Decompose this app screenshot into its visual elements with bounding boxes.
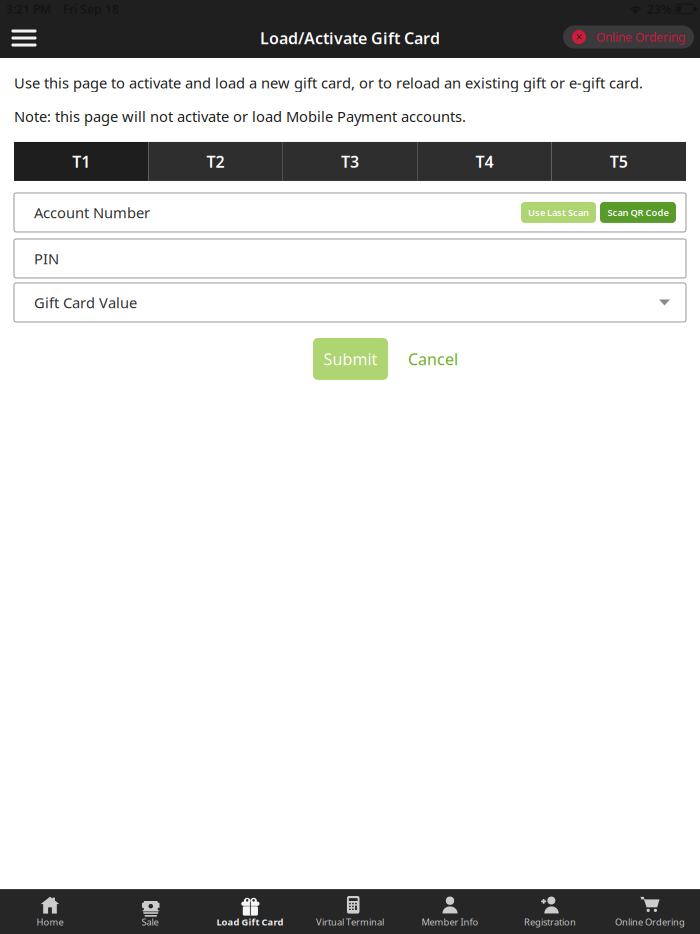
staticText: Member Info (421, 916, 478, 928)
button[interactable]: Virtual Terminal (300, 890, 400, 934)
staticText: Virtual Terminal (316, 916, 384, 928)
button[interactable]: Scan QR Code (600, 202, 676, 223)
staticText: 23% (647, 1, 672, 17)
button[interactable]: Online Ordering (600, 890, 700, 934)
staticText: Load Gift Card (216, 916, 283, 928)
staticText: Sale (141, 916, 158, 928)
button[interactable]: Home (0, 890, 100, 934)
staticText: Fri Sep 18 (63, 1, 119, 17)
button[interactable]: T1 (14, 142, 148, 181)
button[interactable]: Sale (100, 890, 200, 934)
staticText: T1 (72, 151, 90, 172)
staticText: T3 (341, 151, 359, 172)
staticText: Use this page to activate and load a new… (14, 73, 643, 92)
button[interactable]: T3 (283, 142, 417, 181)
staticText: T2 (207, 151, 225, 172)
button[interactable]: Load Gift Card (200, 890, 300, 934)
staticText: Submit (323, 348, 377, 369)
staticText: Home (36, 916, 63, 928)
staticText: T5 (610, 151, 628, 172)
staticText: Cancel (408, 348, 458, 369)
button[interactable]: Menu (2, 18, 46, 58)
staticText: Load/Activate Gift Card (260, 27, 440, 49)
staticText: Online Ordering (596, 29, 685, 45)
button[interactable]: Gift Card Value (14, 283, 686, 322)
staticText: Account Number (34, 203, 150, 222)
staticText: Online Ordering (615, 916, 685, 928)
button[interactable]: ✕ (563, 25, 694, 50)
staticText: Use Last Scan (528, 206, 589, 219)
staticText: 3:21 PM (6, 1, 51, 17)
staticText: Scan QR Code (607, 206, 668, 219)
button[interactable]: Cancel (388, 338, 478, 380)
staticText: T4 (475, 151, 493, 172)
button[interactable]: T4 (417, 142, 552, 181)
button[interactable]: T5 (552, 142, 686, 181)
button[interactable]: Member Info (400, 890, 500, 934)
button[interactable]: Submit (313, 338, 388, 380)
button[interactable]: Use Last Scan (521, 202, 596, 223)
button[interactable]: T2 (148, 142, 283, 181)
staticText: PIN (34, 249, 59, 268)
button[interactable]: Registration (500, 890, 600, 934)
staticText: Note: this page will not activate or loa… (14, 106, 466, 126)
staticText: Gift Card Value (34, 293, 137, 312)
staticText: ✕ (575, 32, 583, 42)
staticText: Registration (524, 916, 576, 928)
